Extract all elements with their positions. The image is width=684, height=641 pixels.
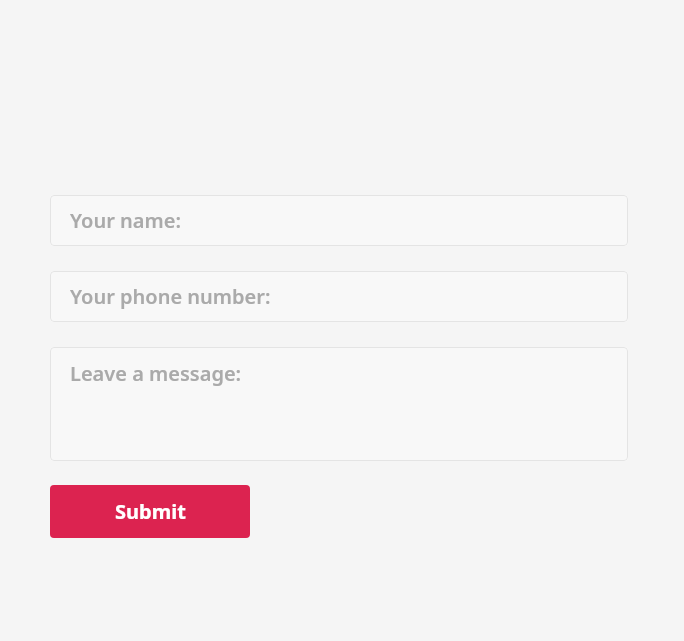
- staticText: Submit: [115, 498, 186, 525]
- staticText: Your name:: [70, 207, 181, 234]
- button[interactable]: Leave a message:: [50, 347, 628, 461]
- staticText: Your phone number:: [70, 283, 271, 310]
- button[interactable]: Your name:: [50, 195, 628, 246]
- staticText: Leave a message:: [70, 360, 242, 387]
- button[interactable]: Submit form: [50, 485, 250, 538]
- button[interactable]: Your phone number:: [50, 271, 628, 322]
